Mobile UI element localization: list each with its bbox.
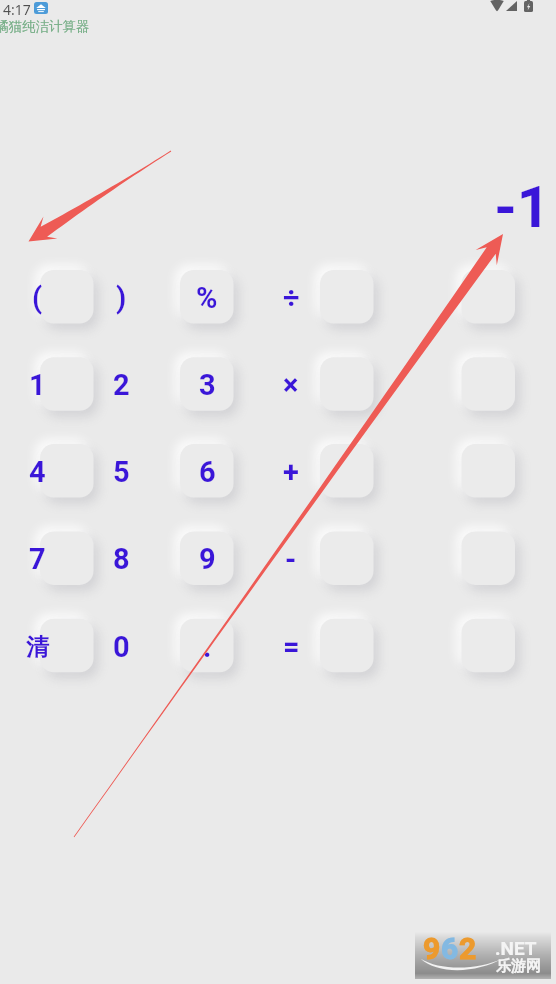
button[interactable]: - bbox=[269, 529, 518, 587]
staticText: 5 bbox=[113, 455, 130, 489]
staticText: 6 bbox=[441, 931, 459, 966]
staticText: 0 bbox=[113, 630, 130, 664]
button[interactable]: + bbox=[269, 442, 518, 500]
staticText: 2 bbox=[113, 368, 130, 402]
staticText: % bbox=[196, 281, 218, 315]
staticText: -1 bbox=[0, 173, 550, 241]
button[interactable]: 9 bbox=[185, 529, 377, 587]
staticText: ( bbox=[32, 281, 43, 315]
button[interactable]: key bbox=[462, 357, 516, 411]
button[interactable]: 3 bbox=[185, 355, 377, 413]
button[interactable]: 2 bbox=[99, 355, 236, 413]
staticText: 乐游网 bbox=[496, 957, 541, 976]
staticText: 9 bbox=[423, 931, 441, 966]
button[interactable]: 5 bbox=[99, 442, 236, 500]
staticText: = bbox=[283, 630, 300, 664]
button[interactable]: 1 bbox=[15, 355, 96, 413]
staticText: 1 bbox=[29, 368, 46, 402]
button[interactable]: % bbox=[185, 268, 377, 326]
button[interactable]: key bbox=[462, 270, 516, 324]
staticText: 9 bbox=[199, 542, 216, 576]
staticText: 8 bbox=[113, 542, 130, 576]
staticText: 2 bbox=[459, 931, 477, 966]
button[interactable]: key bbox=[462, 619, 516, 673]
staticText: 清 bbox=[26, 633, 49, 662]
staticText: 4 bbox=[29, 455, 46, 489]
staticText: 4:17 bbox=[3, 0, 31, 19]
button[interactable]: 7 bbox=[15, 529, 96, 587]
button[interactable]: 6 bbox=[185, 442, 377, 500]
button[interactable]: 清 bbox=[15, 617, 96, 675]
button[interactable]: ) bbox=[99, 268, 236, 326]
staticText: .NET bbox=[495, 937, 537, 959]
staticText: 7 bbox=[29, 542, 46, 576]
button[interactable]: = bbox=[269, 617, 518, 675]
staticText: 3 bbox=[199, 368, 216, 402]
staticText: . bbox=[203, 630, 212, 664]
button[interactable]: ( bbox=[15, 268, 96, 326]
button[interactable]: 8 bbox=[99, 529, 236, 587]
button[interactable]: 4 bbox=[15, 442, 96, 500]
button[interactable]: . bbox=[185, 617, 377, 675]
button[interactable]: × bbox=[269, 355, 518, 413]
staticText: 6 bbox=[199, 455, 216, 489]
staticText: ) bbox=[116, 281, 127, 315]
staticText: ÷ bbox=[283, 281, 300, 315]
button[interactable]: 0 bbox=[99, 617, 236, 675]
staticText: + bbox=[283, 455, 299, 489]
button[interactable]: ÷ bbox=[269, 268, 518, 326]
staticText: 橘猫纯洁计算器 bbox=[0, 18, 90, 35]
button[interactable]: key bbox=[462, 444, 516, 498]
button[interactable]: key bbox=[462, 531, 516, 585]
staticText: × bbox=[283, 368, 299, 402]
staticText: - bbox=[285, 542, 297, 576]
